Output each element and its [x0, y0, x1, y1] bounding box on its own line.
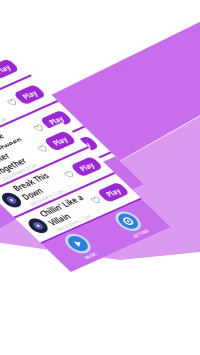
staticText: Space Between	[31, 145, 95, 184]
button[interactable]: Play	[156, 99, 200, 125]
staticText: Better Together	[31, 62, 95, 101]
staticText: Descendants 2 Cast	[31, 159, 106, 169]
button[interactable]: MUSIC	[0, 269, 100, 321]
staticText: Descendants 2 Cast	[31, 126, 106, 137]
staticText: What's My Name	[31, 87, 105, 126]
staticText: Descendants 2 Cast	[31, 184, 106, 194]
button[interactable]: SETTING	[100, 236, 200, 289]
staticText: Descendants 2 Cast	[31, 216, 106, 227]
button[interactable]: MUSIC	[0, 236, 100, 289]
button[interactable]: Play	[156, 42, 200, 67]
staticText: Descendants 2 Cast	[31, 101, 106, 112]
staticText: Play	[167, 218, 195, 236]
staticText: Descendants 2 Cast	[31, 69, 106, 79]
staticText: Better Together	[31, 202, 95, 241]
button[interactable]: Play	[156, 132, 200, 157]
staticText: Ways to Be Wicked	[31, 30, 111, 69]
staticText: Play	[167, 103, 195, 121]
staticText: Chillin' Like a Villain	[31, 177, 125, 216]
staticText: Descendants 2 Cast	[31, 241, 106, 252]
staticText: Break This Down	[31, 120, 106, 159]
button[interactable]: Play	[156, 214, 200, 240]
